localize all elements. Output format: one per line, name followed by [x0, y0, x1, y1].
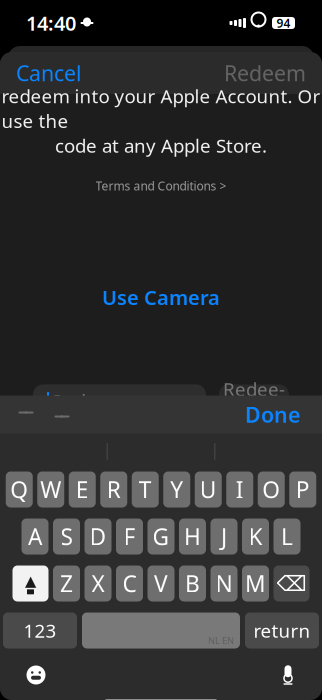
button[interactable]: M — [242, 565, 269, 601]
staticText: return — [253, 618, 310, 643]
staticText: Use Camera — [102, 284, 220, 310]
button[interactable]: P — [289, 471, 316, 507]
staticText: 14:40 — [26, 10, 76, 36]
button[interactable]: Shift — [12, 565, 48, 601]
staticText: NL EN — [208, 634, 234, 646]
button[interactable]: B — [179, 565, 206, 601]
staticText: R — [107, 474, 121, 504]
staticText: code at any Apple Store. — [55, 133, 267, 158]
staticText: ⌫ — [276, 571, 306, 596]
button[interactable]: Use Camera — [86, 276, 236, 318]
staticText: O — [262, 474, 280, 504]
staticText: Redeem — [223, 377, 285, 426]
staticText: H — [184, 521, 201, 551]
button[interactable]: 123 — [3, 612, 77, 648]
button[interactable]: C — [116, 565, 143, 601]
staticText: Y — [170, 474, 183, 504]
button[interactable]: X — [84, 565, 111, 601]
staticText: C — [122, 568, 136, 598]
staticText: D — [89, 521, 106, 551]
staticText: ▲ — [25, 573, 36, 589]
staticText: L — [281, 521, 293, 551]
staticText: Z — [60, 568, 73, 598]
button[interactable]: S — [53, 518, 80, 554]
staticText: B — [185, 568, 200, 598]
button[interactable]: Q — [6, 471, 33, 507]
staticText: > — [219, 178, 226, 194]
button[interactable]: F — [116, 518, 143, 554]
button[interactable]: Redeem — [219, 384, 289, 418]
staticText: W — [40, 474, 61, 504]
staticText: A — [28, 521, 42, 551]
staticText: Done — [245, 400, 300, 429]
staticText: I — [236, 474, 244, 504]
button[interactable]: T — [132, 471, 159, 507]
button[interactable]: Previous field — [8, 399, 44, 429]
button[interactable]: Space — [82, 612, 240, 648]
staticText: S — [60, 521, 72, 551]
staticText: T — [139, 474, 152, 504]
button[interactable]: return — [245, 612, 319, 648]
staticText: Terms and Conditions — [95, 178, 216, 194]
staticText: G — [152, 521, 169, 551]
staticText: J — [221, 521, 227, 551]
button[interactable]: D — [84, 518, 111, 554]
staticText: Redeem — [224, 59, 306, 87]
button[interactable]: G — [147, 518, 174, 554]
staticText: Q — [10, 474, 28, 504]
staticText: P — [296, 474, 310, 504]
staticText: redeem into your Apple Account. Or use t… — [1, 84, 320, 133]
button[interactable]: Delete — [273, 565, 309, 601]
button[interactable]: U — [195, 471, 222, 507]
button[interactable]: Next field — [44, 399, 80, 429]
button[interactable]: R — [100, 471, 127, 507]
staticText: E — [76, 474, 89, 504]
button[interactable]: N — [210, 565, 237, 601]
button[interactable]: O — [258, 471, 285, 507]
button[interactable]: Cancel — [0, 49, 98, 97]
button[interactable]: K — [242, 518, 269, 554]
button[interactable]: Y — [163, 471, 190, 507]
staticText: M — [245, 568, 266, 598]
button[interactable]: Done — [231, 394, 314, 435]
button[interactable]: Redeem — [208, 49, 322, 97]
staticText: K — [248, 521, 262, 551]
button[interactable]: Z — [53, 565, 80, 601]
button[interactable]: H — [179, 518, 206, 554]
staticText: N — [215, 568, 232, 598]
button[interactable]: Emoji — [16, 655, 56, 695]
button[interactable]: V — [147, 565, 174, 601]
button[interactable]: L — [273, 518, 300, 554]
staticText: V — [154, 568, 168, 598]
staticText: X — [91, 568, 104, 598]
button[interactable]: A — [21, 518, 48, 554]
button[interactable]: J — [210, 518, 237, 554]
button[interactable]: E — [69, 471, 96, 507]
button[interactable]: Terms and Conditions — [87, 174, 234, 198]
staticText: Code — [49, 388, 97, 415]
staticText: U — [200, 474, 217, 504]
staticText: Cancel — [16, 59, 82, 87]
staticText: 94 — [276, 15, 290, 31]
button[interactable]: Dictate — [270, 654, 306, 695]
button[interactable]: W — [37, 471, 64, 507]
button[interactable]: I — [226, 471, 253, 507]
staticText: 123 — [23, 618, 56, 643]
staticText: F — [123, 521, 135, 551]
